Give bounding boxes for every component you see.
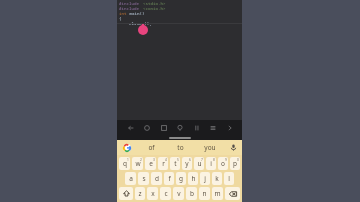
staticText: 9 [225,158,227,162]
button[interactable]: to [166,140,195,155]
button[interactable]: h [188,172,198,185]
staticText: 1 [127,158,129,162]
staticText: y [185,159,189,168]
button[interactable]: c [160,187,171,200]
button[interactable]: o [218,157,228,170]
staticText: m [214,189,221,198]
button[interactable]: Editor action 2 [140,121,153,134]
staticText: c [164,189,168,198]
button[interactable]: e [145,157,156,170]
staticText: t [174,159,177,168]
button[interactable]: Editor action 7 [223,121,236,134]
staticText: 0 [237,158,239,162]
staticText: p [233,159,237,168]
button[interactable]: #include [117,0,242,120]
staticText: 5 [177,158,179,162]
button[interactable]: v [173,187,184,200]
button[interactable]: Shift [119,187,133,200]
button[interactable]: n [199,187,210,200]
button[interactable]: f [164,172,174,185]
button[interactable]: m [212,187,223,200]
staticText: q [123,159,127,168]
staticText: d [155,174,159,183]
button[interactable]: w [132,157,143,170]
staticText: int [119,11,127,16]
staticText: <stdio.h> [143,1,166,6]
staticText: b [190,189,194,198]
staticText: { [119,16,122,21]
staticText: v [177,189,181,198]
button[interactable]: Editor action 6 [206,121,219,134]
staticText: o [221,159,225,168]
button[interactable]: k [212,172,222,185]
button[interactable]: b [186,187,197,200]
staticText: a [129,174,133,183]
staticText: f [168,174,171,183]
other: Text cursor handle [138,24,148,34]
button[interactable]: g [176,172,186,185]
staticText: main() [127,11,145,16]
button[interactable]: l [224,172,234,185]
staticText: #include [119,1,140,6]
staticText: 8 [213,158,215,162]
staticText: k [215,174,219,183]
staticText: of [148,143,155,152]
staticText: s [142,174,146,183]
button[interactable]: of [137,140,166,155]
button[interactable]: Editor action 5 [190,121,203,134]
button[interactable]: i [206,157,216,170]
button[interactable]: s [138,172,149,185]
staticText: e [149,159,153,168]
staticText: i [210,159,212,168]
button[interactable]: Backspace [225,187,240,200]
button[interactable]: a [125,172,136,185]
button[interactable]: Voice input [224,140,242,155]
staticText: 3 [153,158,155,162]
staticText: h [191,174,196,183]
button[interactable]: Editor action 1 [124,121,137,134]
staticText: l [228,174,230,183]
button[interactable]: Editor action 4 [173,121,186,134]
staticText: #include [119,6,140,11]
button[interactable]: d [151,172,162,185]
staticText: you [204,143,216,152]
button[interactable]: Google search [117,140,137,155]
staticText: 2 [140,158,142,162]
button[interactable]: you [195,140,224,155]
button[interactable]: q [119,157,130,170]
staticText: 7 [201,158,203,162]
button[interactable]: z [135,187,145,200]
staticText: z [138,189,142,198]
staticText: u [197,159,202,168]
staticText: j [204,174,206,183]
button[interactable]: p [230,157,240,170]
staticText: to [177,143,184,152]
staticText: <conio.h> [143,6,166,11]
button[interactable]: r [158,157,168,170]
staticText: n [202,189,207,198]
staticText: w [135,159,141,168]
staticText: x [151,189,155,198]
button[interactable]: Editor action 3 [157,121,170,134]
staticText: g [179,174,183,183]
staticText: r [162,159,165,168]
button[interactable]: t [170,157,180,170]
button[interactable]: y [182,157,192,170]
staticText: clrscr(); [119,21,152,26]
button[interactable]: u [194,157,204,170]
staticText: 4 [165,158,167,162]
staticText: 6 [189,158,191,162]
button[interactable]: x [147,187,158,200]
button[interactable]: j [200,172,210,185]
